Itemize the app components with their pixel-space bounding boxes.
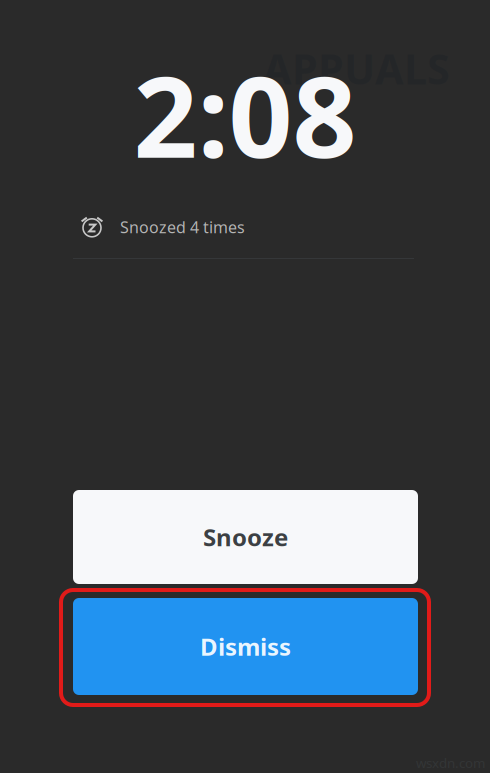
staticText: Snooze xyxy=(203,521,288,553)
button[interactable]: Dismiss xyxy=(73,598,418,695)
staticText: 2:08 xyxy=(133,40,356,189)
staticText: wsxdn.com xyxy=(416,754,485,772)
staticText: Dismiss xyxy=(200,631,291,662)
button[interactable]: Snooze xyxy=(73,490,418,584)
staticText: APPUALS xyxy=(263,41,450,96)
staticText: Snoozed 4 times xyxy=(120,216,245,238)
